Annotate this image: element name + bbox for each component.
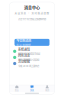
button[interactable]: 今日新消息 [14, 39, 49, 46]
button[interactable]: 活动提醒 [11, 60, 52, 67]
staticText: 消息中心 [24, 5, 40, 11]
button[interactable]: 我的 [40, 85, 55, 92]
staticText: 李明 邀请你加入项目组 [18, 58, 39, 61]
staticText: 我的 [45, 89, 49, 92]
button[interactable]: 首页 [9, 85, 24, 92]
staticText: 活动提醒 [18, 59, 30, 64]
button[interactable]: 消息 [24, 85, 40, 92]
staticText: 未读消息 · 实时推送提醒 [14, 11, 49, 15]
staticText: 点击下方卡片查看全部通知内容 [18, 17, 46, 21]
staticText: 首页 [15, 89, 19, 92]
staticText: 系统通知 [18, 47, 30, 51]
button[interactable]: 团队消息 [11, 54, 52, 60]
staticText: 您的账户已完成安全验证 [18, 52, 40, 55]
staticText: 今晚 20:00 线上发布会 [18, 64, 39, 68]
staticText: 共 12 条待处理 [16, 43, 30, 47]
staticText: 团队消息 [18, 53, 30, 58]
staticText: 消息 [30, 89, 34, 92]
button[interactable]: 系统通知 [11, 48, 52, 54]
staticText: 今日新消息 [16, 38, 31, 43]
